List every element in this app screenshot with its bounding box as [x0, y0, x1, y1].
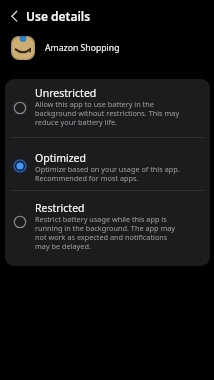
staticText: Restrict battery usage while this app is…	[35, 214, 176, 251]
staticText: Unrestricted	[35, 86, 97, 100]
staticText: Use details	[26, 8, 91, 24]
button[interactable]	[5, 137, 210, 190]
staticText: Restricted	[35, 201, 85, 215]
staticText: Amazon Shopping	[45, 42, 120, 54]
button[interactable]	[5, 190, 210, 266]
staticText: Optimized	[35, 151, 86, 165]
button[interactable]	[11, 35, 171, 60]
button[interactable]	[2, 2, 28, 28]
staticText: Optimize based on your usage of this app…	[35, 164, 180, 183]
button[interactable]	[5, 79, 210, 137]
staticText: Allow this app to use battery in the bac…	[35, 99, 180, 127]
